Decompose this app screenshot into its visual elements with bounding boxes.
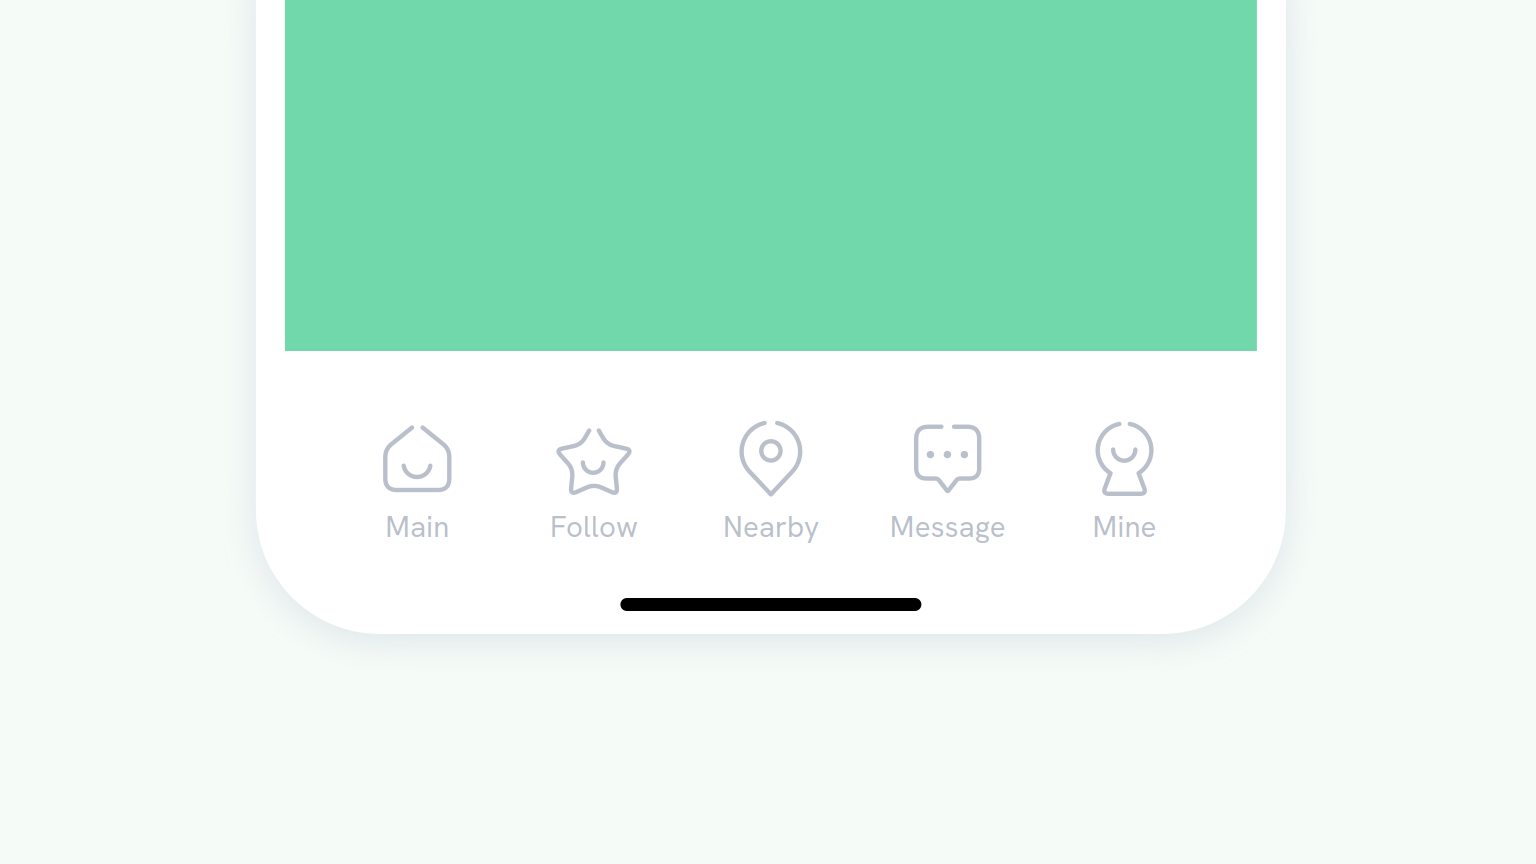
button[interactable]: Message (859, 421, 1036, 546)
button[interactable]: Follow (506, 421, 682, 546)
button[interactable]: Nearby (682, 421, 859, 546)
button[interactable]: Mine (1036, 421, 1213, 546)
staticText: Message (890, 508, 1006, 546)
button[interactable]: Main (329, 421, 506, 546)
staticText: Nearby (723, 508, 819, 546)
staticText: Main (385, 508, 449, 546)
staticText: Follow (550, 508, 638, 546)
staticText: Mine (1092, 508, 1156, 546)
